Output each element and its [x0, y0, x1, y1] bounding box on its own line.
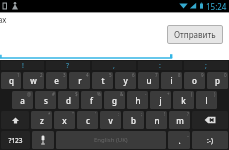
staticText: a: [20, 95, 25, 106]
staticText: w: [30, 75, 37, 86]
staticText: l: [205, 95, 208, 106]
staticText: _: [187, 131, 189, 137]
staticText: z: [40, 115, 44, 126]
button[interactable]: p: [207, 72, 228, 89]
staticText: e: [54, 75, 59, 86]
staticText: 6: [132, 72, 135, 78]
staticText: s: [44, 95, 48, 106]
staticText: 15:24: [206, 1, 227, 12]
button[interactable]: a: [12, 91, 33, 109]
staticText: o: [192, 75, 197, 86]
staticText: (: [191, 91, 193, 97]
button[interactable]: Отправить: [167, 25, 223, 44]
staticText: r: [78, 75, 82, 86]
button[interactable]: s: [35, 91, 56, 109]
button[interactable]: :: [138, 61, 182, 70]
staticText: q: [9, 75, 14, 86]
button[interactable]: x: [54, 111, 75, 129]
staticText: g: [112, 95, 117, 106]
staticText: ": [72, 111, 74, 117]
staticText: English (UK): [94, 136, 128, 144]
staticText: y: [123, 75, 128, 86]
button[interactable]: o: [184, 72, 205, 89]
button[interactable]: English (UK): [56, 131, 166, 149]
staticText: ах: [0, 14, 7, 25]
staticText: v: [108, 115, 113, 126]
staticText: n: [154, 115, 160, 126]
staticText: t: [101, 75, 105, 86]
staticText: ?: [66, 61, 70, 70]
staticText: 0: [224, 72, 227, 78]
staticText: &: [120, 91, 124, 97]
button[interactable]: b: [123, 111, 144, 129]
button[interactable]: ?: [46, 61, 90, 70]
staticText: 2: [40, 72, 43, 78]
staticText: 4: [86, 72, 89, 78]
button[interactable]: !: [1, 61, 44, 70]
button[interactable]: y: [115, 72, 136, 89]
button[interactable]: d: [58, 91, 79, 109]
button[interactable]: Shift: [1, 111, 29, 129]
staticText: i: [170, 75, 173, 86]
button[interactable]: w: [23, 72, 44, 89]
staticText: ,: [113, 61, 115, 70]
button[interactable]: ?123: [1, 131, 30, 149]
staticText: ;: [205, 61, 207, 70]
staticText: !: [22, 61, 24, 70]
staticText: h: [135, 95, 141, 106]
staticText: ): [214, 91, 216, 97]
button[interactable]: z: [31, 111, 52, 129]
staticText: 1: [17, 72, 20, 78]
button[interactable]: :-): [192, 131, 228, 149]
staticText: .: [178, 135, 181, 146]
staticText: !: [164, 111, 166, 117]
staticText: k: [181, 95, 186, 106]
button[interactable]: u: [138, 72, 159, 89]
button[interactable]: h: [127, 91, 148, 109]
staticText: x: [62, 115, 67, 126]
staticText: ;: [141, 111, 143, 117]
button[interactable]: m: [169, 111, 190, 129]
staticText: Отправить: [174, 29, 216, 40]
button[interactable]: Voice input: [32, 131, 54, 149]
staticText: 3: [63, 72, 66, 78]
staticText: f: [90, 95, 93, 106]
staticText: +: [167, 91, 170, 97]
button[interactable]: c: [77, 111, 98, 129]
staticText: d: [66, 95, 71, 106]
button[interactable]: Backspace: [192, 111, 228, 129]
button[interactable]: k: [173, 91, 194, 109]
staticText: ?: [187, 111, 189, 117]
staticText: p: [215, 75, 220, 86]
button[interactable]: ,: [92, 61, 136, 70]
button[interactable]: g: [104, 91, 125, 109]
staticText: #: [52, 91, 55, 97]
staticText: @: [27, 91, 32, 97]
button[interactable]: i: [161, 72, 182, 89]
staticText: :: [118, 111, 120, 117]
button[interactable]: ;: [184, 61, 228, 70]
staticText: b: [131, 115, 136, 126]
staticText: :: [159, 61, 161, 70]
button[interactable]: q: [1, 72, 21, 89]
staticText: %: [97, 91, 101, 97]
button[interactable]: f: [81, 91, 102, 109]
staticText: u: [146, 75, 152, 86]
button[interactable]: n: [146, 111, 167, 129]
button[interactable]: l: [196, 91, 217, 109]
button[interactable]: [0, 44, 229, 60]
staticText: 7: [155, 72, 158, 78]
button[interactable]: e: [46, 72, 67, 89]
button[interactable]: t: [92, 72, 113, 89]
staticText: ': [95, 111, 97, 117]
staticText: 8: [178, 72, 181, 78]
staticText: m: [176, 115, 184, 126]
button[interactable]: v: [100, 111, 121, 129]
staticText: -: [145, 91, 147, 97]
button[interactable]: r: [69, 72, 90, 89]
staticText: j: [159, 95, 162, 106]
button[interactable]: j: [150, 91, 171, 109]
staticText: ?123: [8, 136, 23, 145]
staticText: $: [75, 91, 78, 97]
button[interactable]: .: [168, 131, 190, 149]
